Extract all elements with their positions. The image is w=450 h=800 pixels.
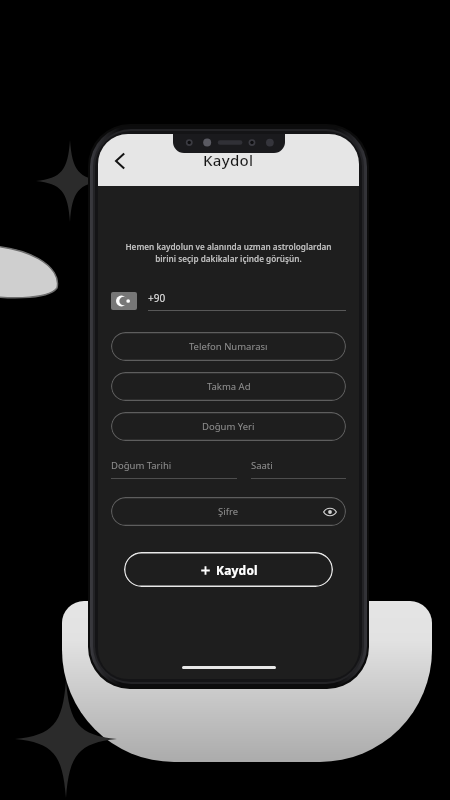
- staticText: Takma Ad: [207, 380, 251, 393]
- button[interactable]: +90: [111, 288, 346, 314]
- button[interactable]: Doğum Yeri: [111, 412, 346, 441]
- button[interactable]: Back: [102, 142, 138, 178]
- button[interactable]: Show password: [322, 504, 338, 520]
- button[interactable]: Saati: [251, 459, 346, 479]
- button[interactable]: Takma Ad: [111, 372, 346, 401]
- staticText: +90: [148, 291, 166, 305]
- staticText: Hemen kaydolun ve alanında uzman astrolo…: [118, 241, 339, 264]
- staticText: Doğum Yeri: [202, 420, 255, 433]
- staticText: Telefon Numarası: [189, 340, 268, 353]
- staticText: Doğum Tarihi: [111, 459, 172, 472]
- button[interactable]: Doğum Tarihi: [111, 459, 237, 479]
- button[interactable]: Şifre: [111, 497, 346, 526]
- button[interactable]: Telefon Numarası: [111, 332, 346, 361]
- staticText: Kaydol: [216, 562, 258, 578]
- staticText: Şifre: [218, 505, 239, 518]
- button[interactable]: Kaydol: [124, 552, 333, 587]
- staticText: Saati: [251, 459, 273, 472]
- staticText: Kaydol: [203, 150, 254, 170]
